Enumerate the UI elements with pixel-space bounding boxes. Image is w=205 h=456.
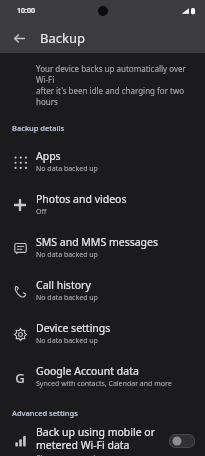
button[interactable]: G [0, 355, 205, 398]
button[interactable]: Back [6, 25, 32, 51]
staticText: 10:00 [17, 6, 35, 16]
staticText: Off [36, 207, 47, 217]
staticText: Charges may apply [36, 453, 99, 456]
staticText: Device settings [36, 321, 111, 335]
button[interactable]: Device settings [0, 312, 205, 355]
button[interactable]: Back up using mobile data toggle [169, 434, 195, 448]
staticText: Call history [36, 278, 91, 292]
staticText: Photos and videos [36, 192, 127, 206]
button[interactable]: Apps [0, 140, 205, 183]
staticText: No data backed up [36, 250, 98, 260]
button[interactable]: SMS and MMS messages [0, 226, 205, 269]
staticText: Apps [36, 149, 61, 163]
staticText: No data backed up [36, 336, 98, 346]
staticText: Google Account data [36, 364, 139, 378]
staticText: Backup details [12, 123, 65, 133]
staticText: Your device backs up automatically over … [36, 63, 195, 107]
staticText: G [15, 369, 25, 385]
button[interactable]: Call history [0, 269, 205, 312]
staticText: Back up using mobile or metered Wi-Fi da… [36, 425, 156, 452]
button[interactable]: Back up using mobile or metered Wi-Fi da… [0, 425, 205, 456]
staticText: No data backed up [36, 293, 98, 303]
staticText: Advanced settings [12, 408, 78, 418]
staticText: Synced with contacts, Calendar and more [36, 379, 172, 389]
staticText: SMS and MMS messages [36, 235, 158, 249]
button[interactable]: Photos and videos [0, 183, 205, 226]
staticText: No data backed up [36, 164, 98, 174]
staticText: Backup [40, 29, 85, 47]
